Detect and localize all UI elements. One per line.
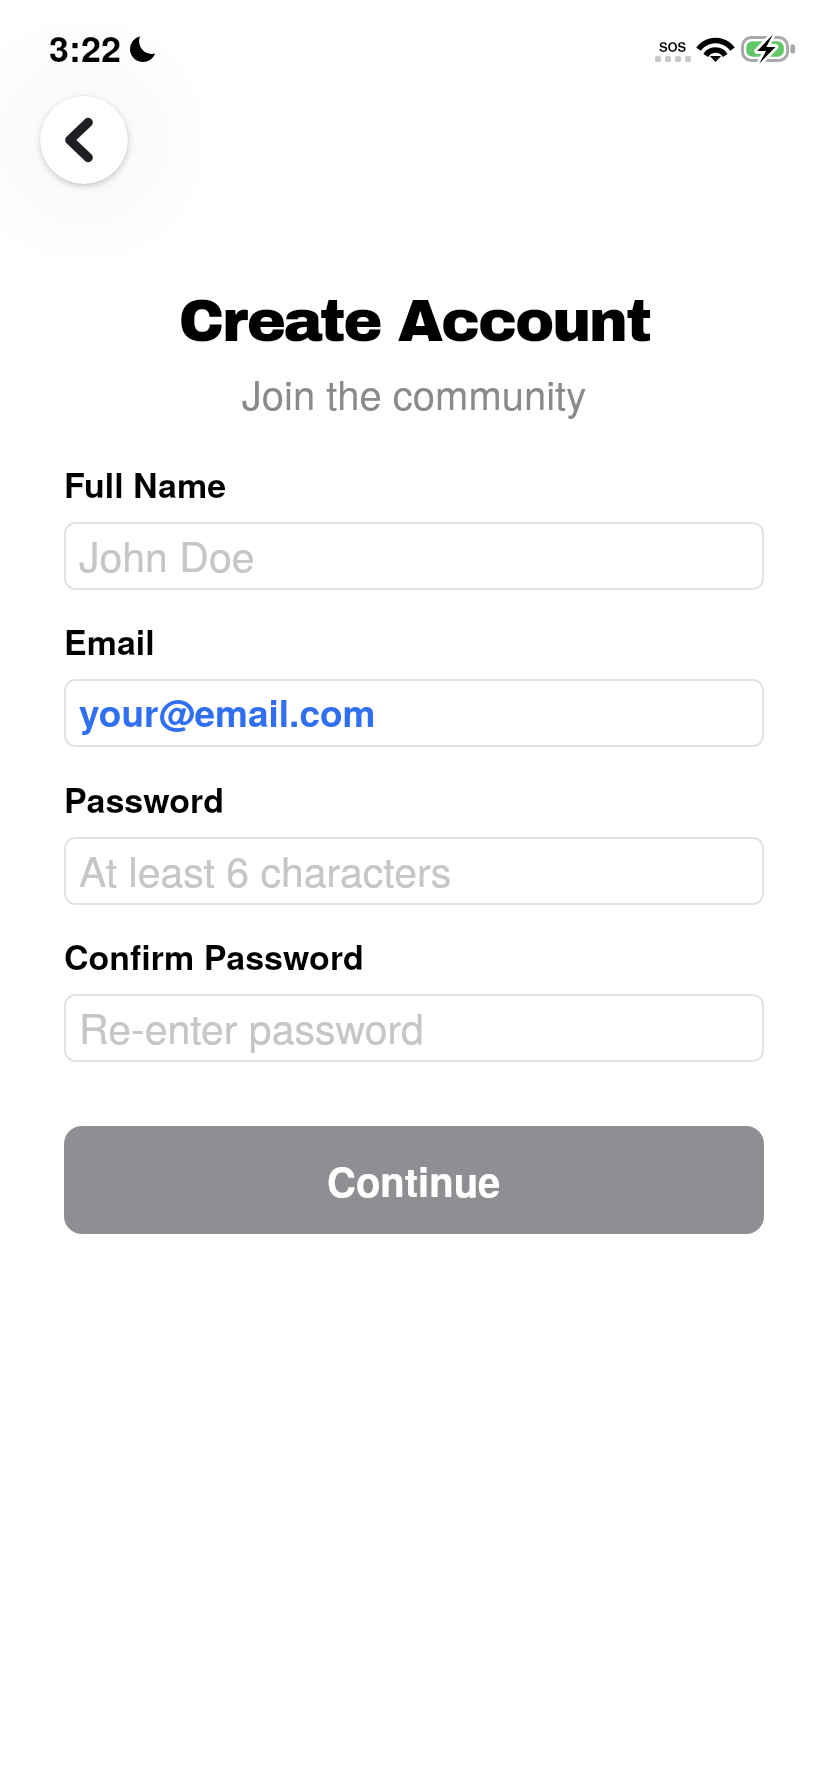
button[interactable]: Continue [64,1126,764,1234]
staticText: Confirm Password [64,932,364,981]
staticText: Join the community [0,364,828,421]
staticText: Email [64,617,155,666]
staticText: John Doe [79,525,255,584]
staticText: your@email.com [79,685,376,738]
button[interactable]: John Doe [64,522,764,590]
staticText: Full Name [64,460,227,509]
staticText: Re-enter password [79,997,424,1056]
staticText: SOS [659,37,686,56]
staticText: Password [64,775,225,824]
button[interactable]: At least 6 characters [64,837,764,905]
staticText: 3:22 [49,21,122,73]
staticText: At least 6 characters [79,840,452,899]
button[interactable]: Re-enter password [64,994,764,1062]
staticText: Continue [327,1152,501,1209]
staticText: Create Account [0,289,828,353]
button[interactable]: your@email.com [64,679,764,747]
button[interactable]: Back [40,96,128,184]
